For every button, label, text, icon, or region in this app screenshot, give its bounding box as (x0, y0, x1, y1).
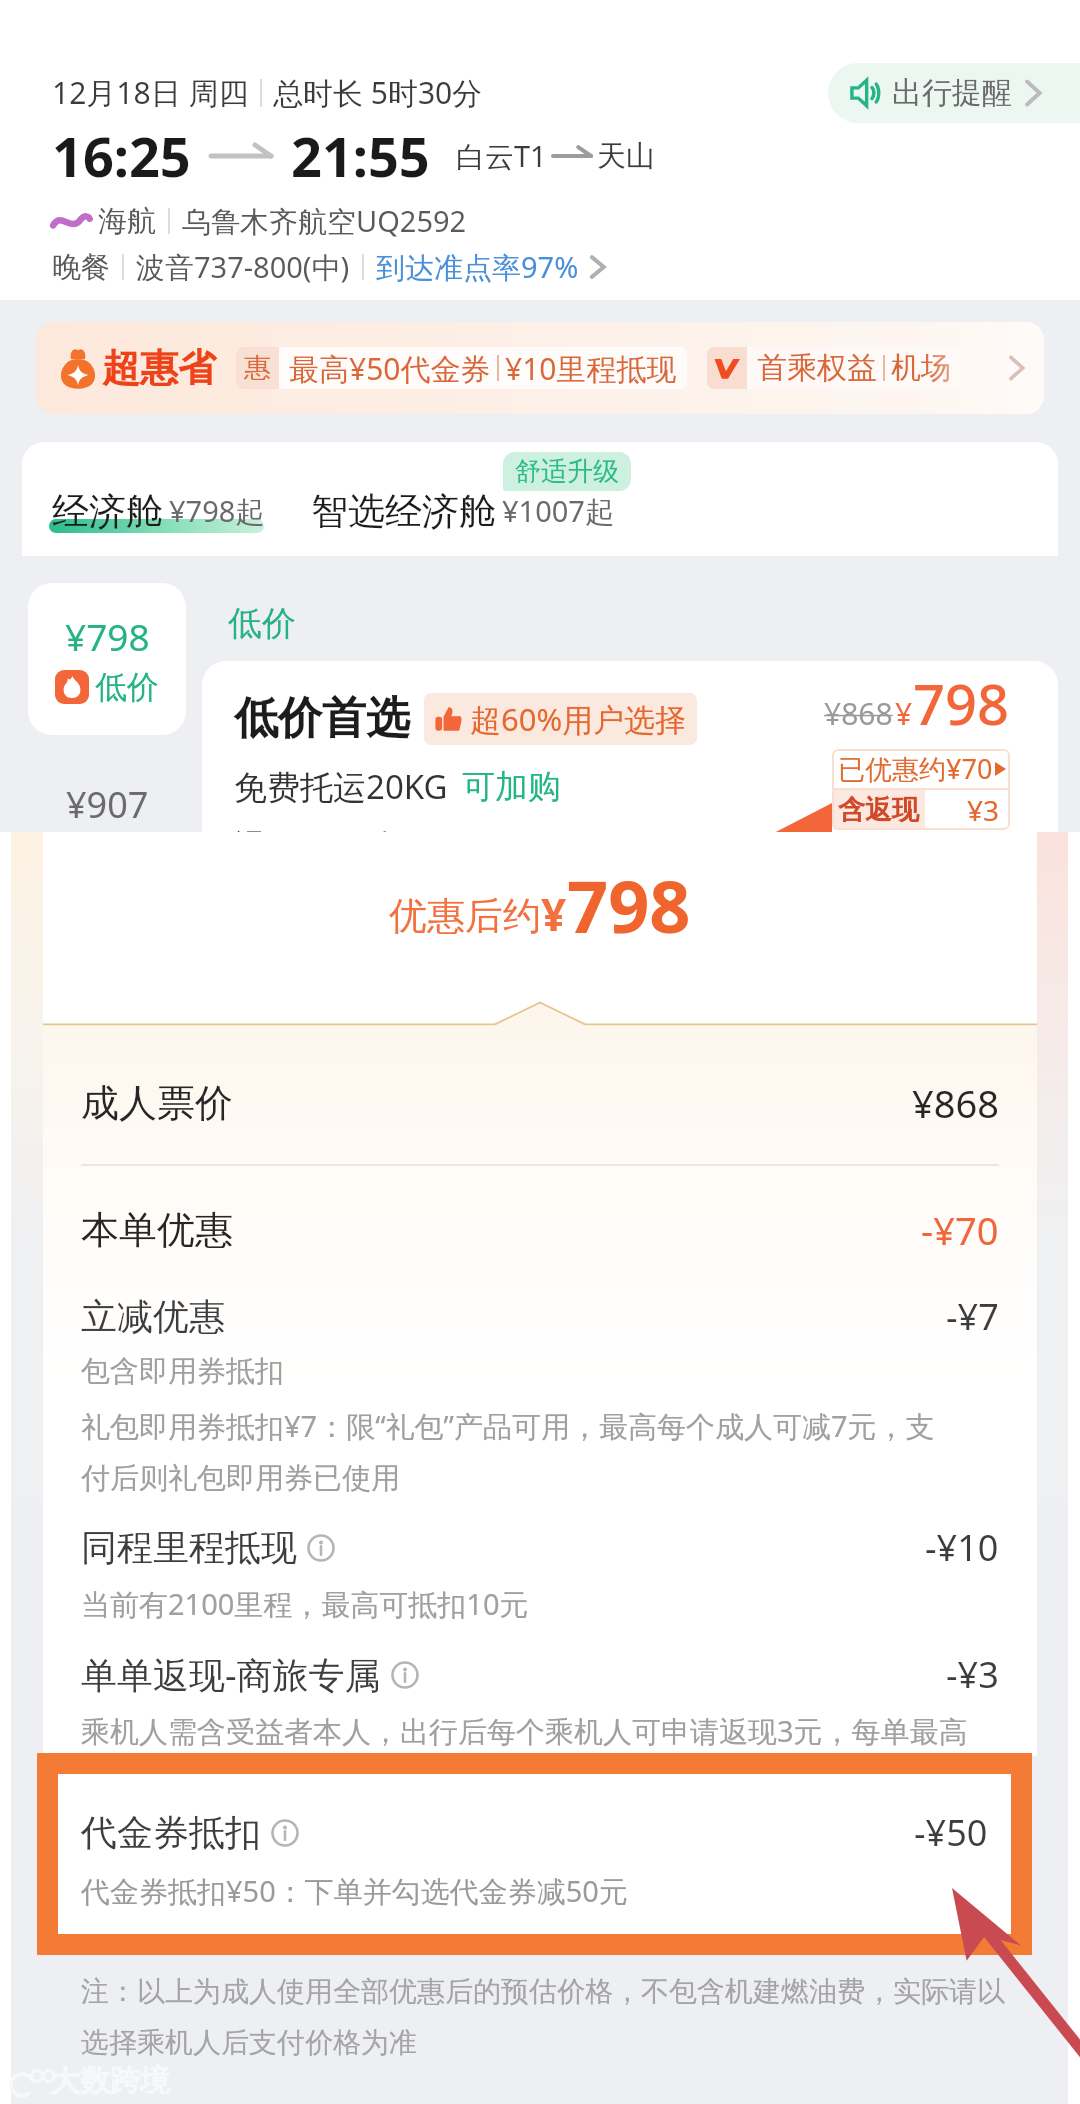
staticText: 晚餐 (52, 249, 110, 286)
staticText: 最高¥50代金券 (289, 348, 491, 389)
staticText: 智选经济舱 (311, 488, 496, 535)
staticText: 同程里程抵现 (81, 1525, 297, 1570)
staticText: ¥ (895, 693, 913, 734)
staticText: 优惠后约 (389, 892, 541, 940)
staticText: -¥3 (946, 1650, 999, 1699)
staticText: 总时长 5时30分 (273, 72, 483, 113)
staticText: 付后则礼包即用券已使用 (81, 1460, 400, 1497)
staticText: 代金券抵扣¥50：下单并勾选代金券减50元 (81, 1871, 628, 1911)
staticText: 波音737-800(中) (136, 247, 350, 287)
button[interactable]: 低价首选 (202, 661, 1058, 836)
staticText: 天山 (597, 138, 655, 175)
staticText: ¥798起 (169, 491, 265, 531)
staticText: 本单优惠 (81, 1206, 233, 1254)
staticText: 首乘权益 (757, 349, 877, 387)
button[interactable]: 超惠省 (36, 322, 1044, 414)
staticText: 16:25 (52, 119, 191, 193)
staticText: 免费托运20KG (234, 764, 448, 809)
staticText: 选择乘机人后支付价格为准 (81, 2025, 417, 2060)
staticText: ¥907 (66, 780, 149, 829)
staticText: 乌鲁木齐航空UQ2592 (182, 201, 467, 241)
staticText: 含返现 (838, 793, 919, 827)
staticText: 可加购 (462, 766, 561, 808)
staticText: -¥70 (921, 1204, 999, 1256)
staticText: ¥ (541, 884, 567, 944)
staticText: 代金券抵扣 (81, 1810, 261, 1855)
staticText: 大数跨境 (50, 2062, 170, 2100)
button[interactable]: ¥798 (28, 583, 186, 735)
staticText: 成人票价 (81, 1079, 233, 1127)
staticText: ¥868 (824, 693, 893, 734)
staticText: 白云T1 (456, 136, 547, 176)
staticText: ¥3 (967, 791, 1000, 829)
staticText: 惠 (244, 351, 271, 385)
staticText: ¥798 (65, 611, 150, 661)
staticText: ¥10里程抵现 (505, 348, 677, 389)
staticText: 机场 (891, 349, 951, 387)
staticText: 注：以上为成人使用全部优惠后的预估价格，不包含机建燃油费，实际请以 (81, 1974, 1005, 2009)
staticText: 超惠省 (102, 344, 216, 392)
button[interactable]: 出行提醒 (828, 63, 1080, 123)
staticText: 乘机人需含受益者本人，出行后每个乘机人可申请返现3元，每单最高 (81, 1711, 968, 1751)
staticText: 经济舱 (52, 488, 163, 535)
button[interactable]: 智选经济舱 (311, 488, 614, 535)
other: 出行提醒 (850, 77, 882, 109)
staticText: 立减优惠 (81, 1294, 225, 1339)
staticText: 当前有2100里程，最高可抵扣10元 (81, 1584, 529, 1624)
staticText: -¥7 (946, 1292, 999, 1341)
staticText: 退改¥504起 (234, 823, 409, 836)
staticText: 海航 (98, 203, 156, 240)
staticText: 12月18日 周四 (52, 72, 249, 113)
staticText: -¥10 (925, 1523, 999, 1572)
staticText: 单单返现-商旅专属 (81, 1650, 381, 1699)
staticText: 出行提醒 (892, 74, 1012, 112)
staticText: ¥1007起 (502, 491, 614, 531)
staticText: 超60%用户选择 (470, 698, 687, 740)
button[interactable]: 经济舱 (52, 488, 267, 535)
staticText: 21:55 (291, 119, 430, 193)
staticText: 798 (913, 665, 1010, 741)
staticText: 低价 (228, 602, 296, 645)
staticText: 包含即用券抵扣 (81, 1353, 284, 1390)
staticText: 798 (567, 856, 691, 954)
staticText: 低价首选 (234, 691, 410, 746)
staticText: 礼包即用券抵扣¥7：限“礼包”产品可用，最高每个成人可减7元，支 (81, 1406, 935, 1446)
staticText: -¥50 (914, 1808, 988, 1857)
staticText: 到达准点率97% (376, 247, 579, 287)
staticText: ¥868 (912, 1077, 999, 1129)
button[interactable]: 代金券抵扣 (37, 1753, 1032, 1955)
staticText: 已优惠约¥70 (838, 750, 993, 787)
staticText: 低价 (95, 667, 159, 707)
staticText: 舒适升级 (515, 455, 619, 488)
